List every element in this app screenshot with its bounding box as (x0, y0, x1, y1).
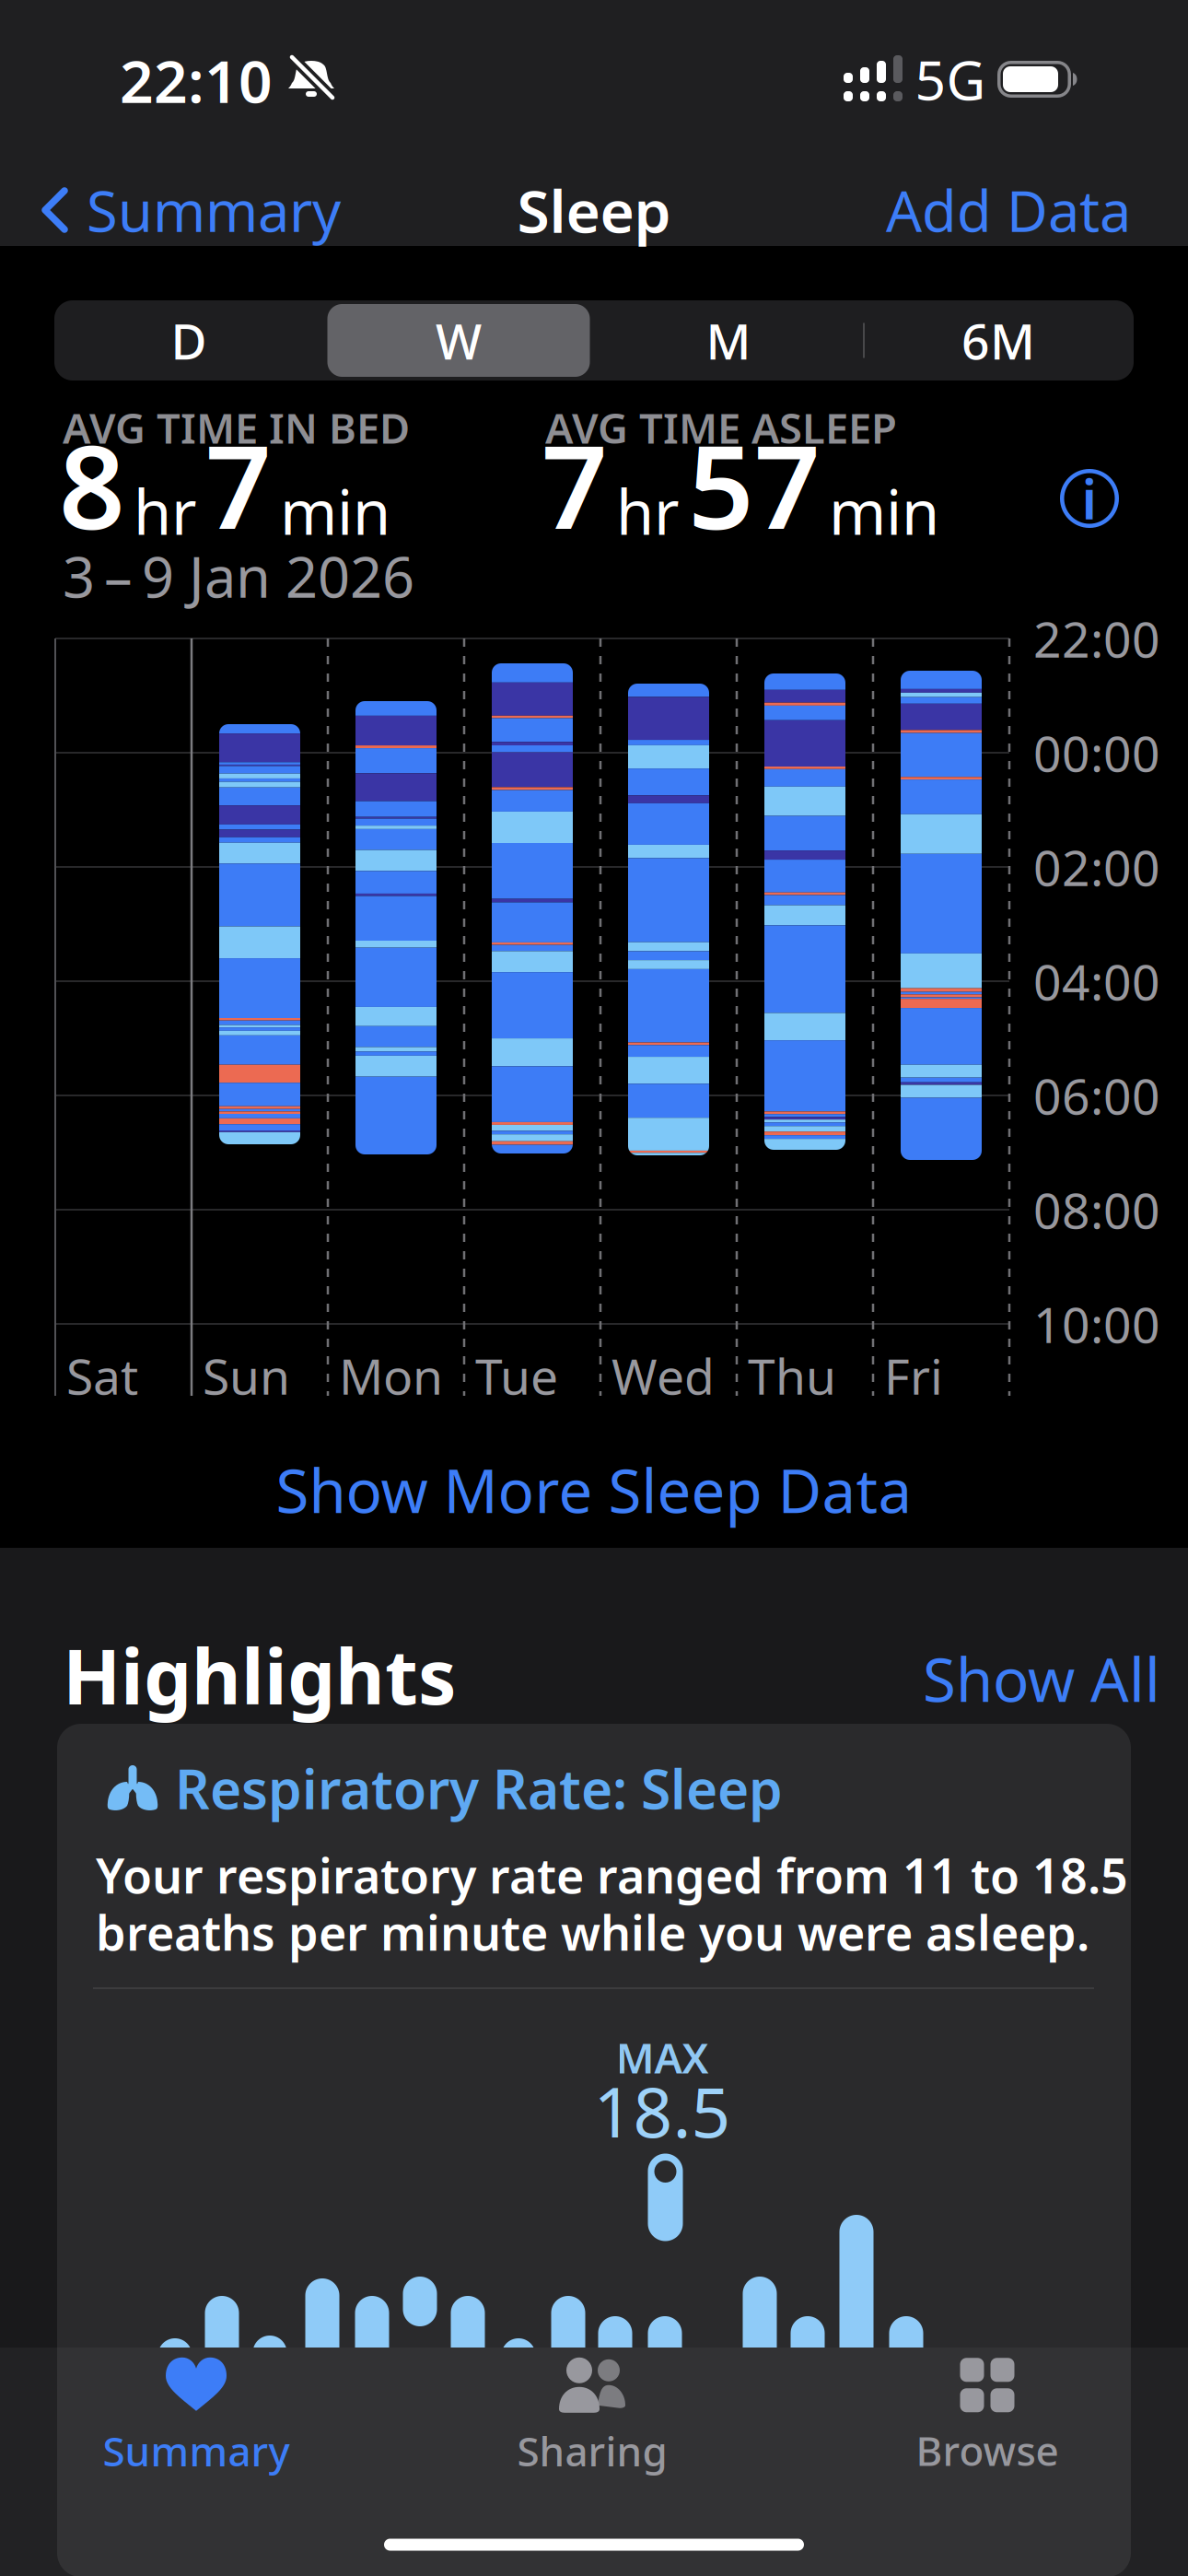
staticText: min (280, 470, 390, 552)
staticText: D (171, 308, 207, 373)
staticText: Show All (923, 1639, 1160, 1719)
staticText: Respiratory Rate: Sleep (175, 1752, 783, 1824)
staticText: AVG TIME ASLEEP (545, 400, 897, 455)
staticText: MAX (616, 2030, 709, 2085)
staticText: Highlights (63, 1624, 456, 1726)
button[interactable]: 6M (934, 313, 1063, 368)
button[interactable]: D (134, 313, 244, 368)
staticText: 02:00 (1033, 834, 1160, 900)
staticText: min (829, 470, 939, 552)
staticText: Your respiratory rate ranged from 11 to … (96, 1843, 1128, 1907)
button[interactable]: Show More Sleep Data (276, 1450, 912, 1530)
staticText: M (706, 308, 751, 373)
staticText: Sleep (517, 171, 671, 249)
button[interactable]: Show All (923, 1639, 1160, 1719)
staticText: Show More Sleep Data (276, 1450, 912, 1530)
staticText: Wed (611, 1343, 715, 1408)
staticText: AVG TIME IN BED (63, 400, 410, 455)
button[interactable]: W (403, 313, 514, 368)
staticText: hr (134, 470, 197, 552)
staticText: Sun (203, 1343, 290, 1408)
staticText: i (1082, 463, 1097, 534)
staticText: Add Data (886, 173, 1131, 248)
button[interactable]: About Sleep (1060, 463, 1119, 534)
button[interactable]: M (673, 313, 784, 368)
staticText: 57 (688, 408, 821, 561)
staticText: 22:00 (1033, 606, 1160, 671)
button[interactable]: Respiratory Rate: Sleep highlight (57, 1724, 1131, 2576)
button[interactable]: Summary (41, 173, 501, 248)
staticText: W (436, 308, 482, 373)
staticText: breaths per minute while you were asleep… (96, 1900, 1089, 1964)
staticText: 08:00 (1033, 1177, 1160, 1242)
button[interactable]: Browse (916, 2358, 1059, 2477)
staticText: Summary (87, 173, 341, 248)
button[interactable]: Summary (103, 2357, 290, 2478)
staticText: 00:00 (1033, 720, 1160, 785)
staticText: 22:10 (120, 41, 273, 119)
staticText: Summary (103, 2424, 290, 2478)
staticText: Browse (916, 2423, 1059, 2477)
staticText: Thu (748, 1343, 836, 1408)
staticText: 3 – 9 Jan 2026 (63, 538, 414, 613)
button[interactable]: Add Data (763, 173, 1131, 248)
staticText: hr (616, 470, 680, 552)
staticText: Fri (884, 1343, 943, 1408)
staticText: Sat (66, 1343, 138, 1408)
staticText: 18.5 (594, 2065, 731, 2156)
staticText: 7 (542, 408, 608, 561)
staticText: Sharing (517, 2424, 667, 2478)
staticText: 06:00 (1033, 1063, 1160, 1128)
staticText: Mon (339, 1343, 443, 1408)
staticText: 7 (205, 408, 272, 561)
staticText: 6M (961, 308, 1035, 373)
staticText: 5G (915, 43, 986, 115)
staticText: 8 (59, 408, 125, 561)
staticText: 10:00 (1033, 1291, 1160, 1357)
staticText: 04:00 (1033, 949, 1160, 1014)
button[interactable]: Sharing (517, 2357, 667, 2478)
staticText: Tue (475, 1343, 558, 1408)
